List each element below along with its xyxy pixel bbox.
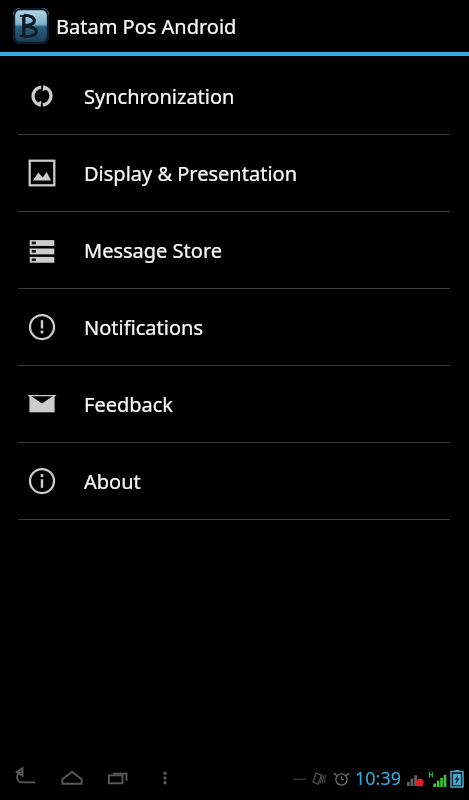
button[interactable]: Home: [54, 760, 90, 796]
staticText: Display & Presentation: [84, 160, 297, 187]
staticText: About: [84, 468, 141, 495]
staticText: Message Store: [84, 237, 223, 264]
button[interactable]: Recent apps: [101, 760, 137, 796]
staticText: Synchronization: [84, 83, 235, 110]
button[interactable]: Message Store: [0, 212, 469, 288]
staticText: Notifications: [84, 314, 203, 341]
staticText: Batam Pos Android: [56, 13, 237, 40]
staticText: 10:39: [355, 766, 402, 791]
button[interactable]: About: [0, 443, 469, 519]
button[interactable]: Synchronization: [0, 58, 469, 134]
button[interactable]: Feedback: [0, 366, 469, 442]
staticText: Feedback: [84, 391, 174, 418]
button[interactable]: Display & Presentation: [0, 135, 469, 211]
button[interactable]: More options: [149, 762, 181, 794]
button[interactable]: Back: [8, 760, 44, 796]
button[interactable]: Notifications: [0, 289, 469, 365]
